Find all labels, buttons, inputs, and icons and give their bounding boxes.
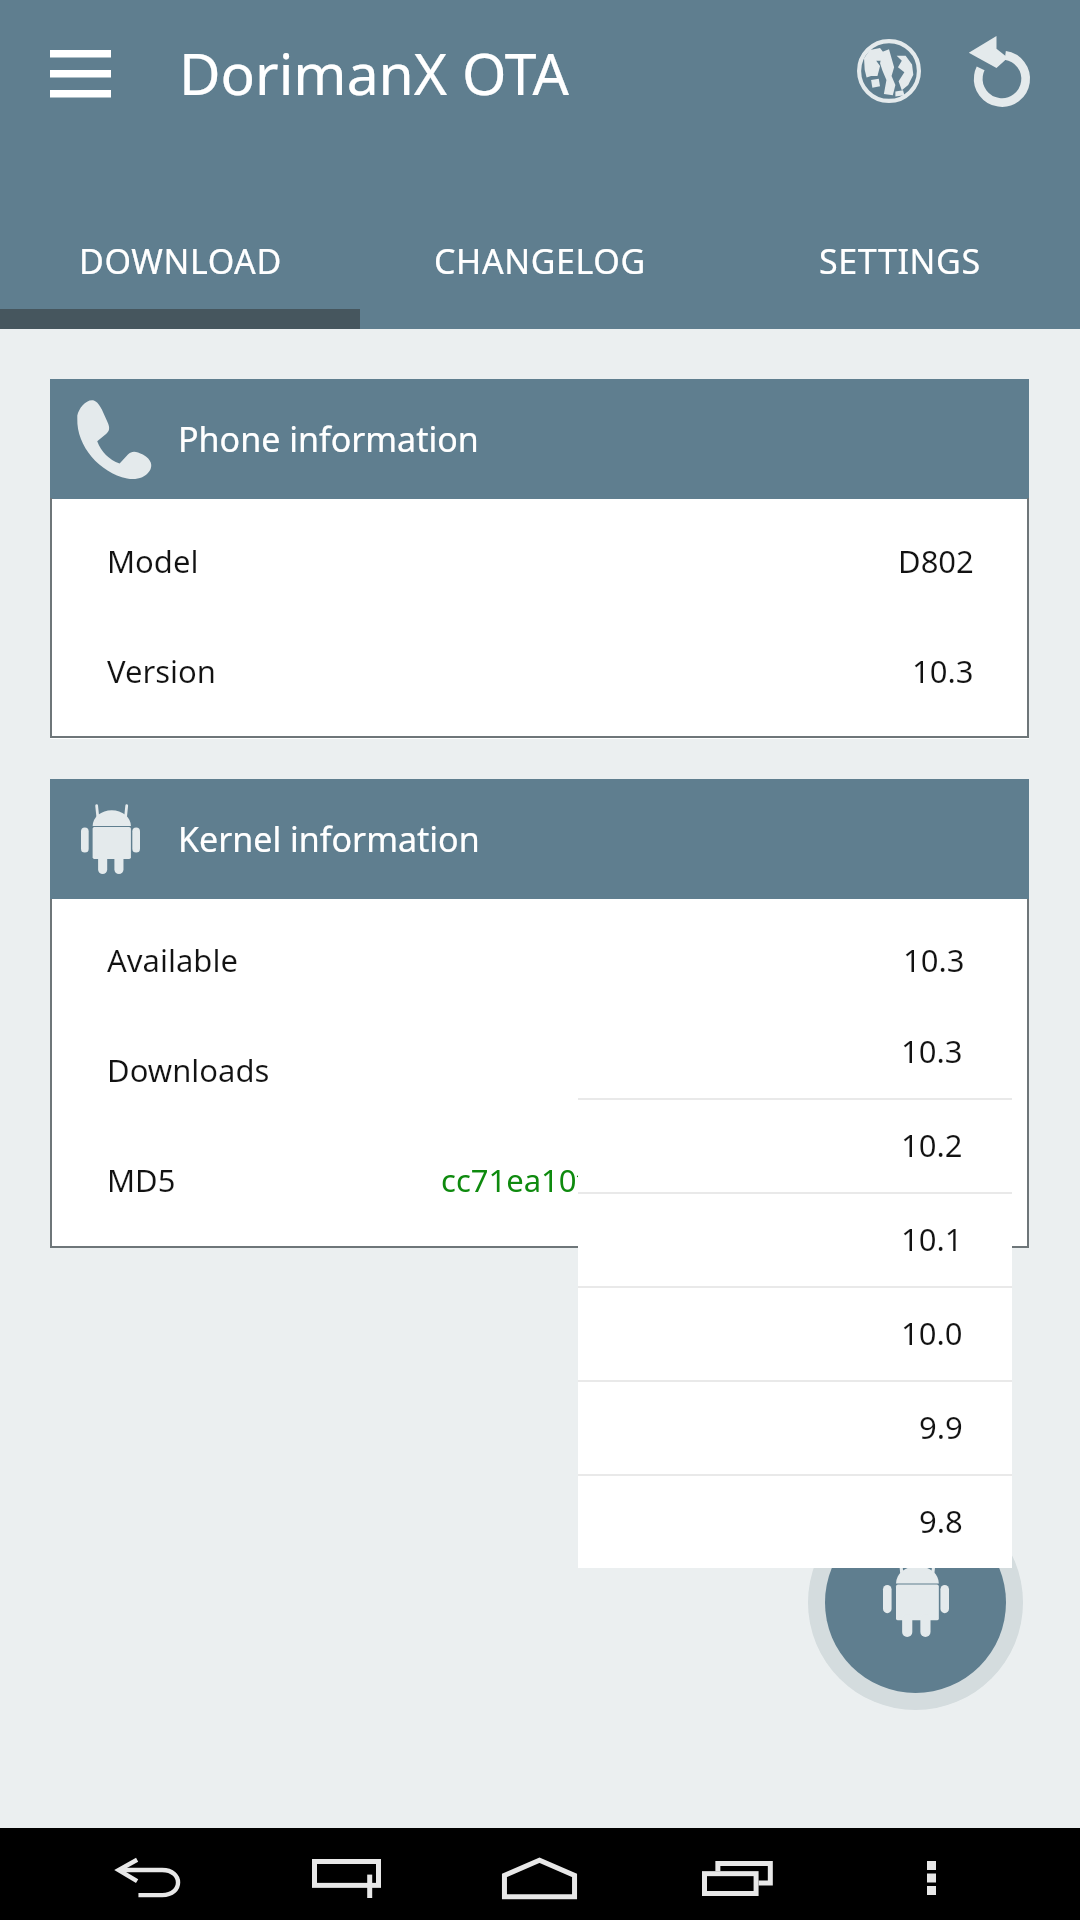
staticText: DorimanX OTA	[179, 34, 569, 112]
staticText: Phone information	[178, 416, 479, 462]
button[interactable]: Kernel information	[50, 779, 1029, 899]
button[interactable]: CHANGELOG	[360, 206, 720, 316]
staticText: Version	[107, 650, 217, 692]
button[interactable]: Hide keyboard	[293, 1828, 399, 1920]
staticText: Model	[107, 540, 199, 582]
button[interactable]: 10.0	[578, 1286, 1012, 1380]
button[interactable]: Version	[50, 616, 1029, 726]
staticText: 10.2	[901, 1124, 963, 1166]
staticText: D802	[898, 540, 974, 582]
staticText: SETTINGS	[819, 238, 981, 284]
staticText: 9.8	[919, 1500, 963, 1542]
button[interactable]: Downloads	[50, 1015, 1029, 1125]
button[interactable]: 9.9	[578, 1380, 1012, 1474]
button[interactable]: 10.3	[578, 1004, 1012, 1098]
staticText: Available	[107, 939, 238, 981]
button[interactable]: DOWNLOAD	[0, 206, 360, 316]
button[interactable]: 10.2	[578, 1098, 1012, 1192]
button[interactable]: Back	[96, 1828, 202, 1920]
button[interactable]: More options	[878, 1828, 984, 1920]
button[interactable]: Refresh	[944, 8, 1056, 133]
button[interactable]: Open navigation drawer	[22, 8, 138, 140]
button[interactable]: MD5	[50, 1125, 1029, 1235]
button[interactable]: Home	[486, 1828, 592, 1920]
button[interactable]: Available	[50, 905, 1029, 1015]
staticText: 10.1	[901, 1218, 963, 1260]
staticText: 10.3	[903, 939, 965, 981]
staticText: DOWNLOAD	[79, 238, 282, 284]
staticText: cc71ea10f6b3de4ba	[441, 1159, 733, 1201]
staticText: CHANGELOG	[434, 238, 646, 284]
button[interactable]: Select server	[834, 8, 944, 133]
staticText: Kernel information	[178, 816, 480, 862]
staticText: 10.3	[901, 1030, 963, 1072]
button[interactable]: Phone information	[50, 379, 1029, 499]
button[interactable]: SETTINGS	[720, 206, 1080, 316]
button[interactable]: Recent apps	[683, 1828, 789, 1920]
staticText: 10.3	[912, 650, 974, 692]
button[interactable]: Model	[50, 506, 1029, 616]
button[interactable]: 10.1	[578, 1192, 1012, 1286]
staticText: MD5	[107, 1159, 176, 1201]
staticText: Downloads	[107, 1049, 270, 1091]
staticText: 9.9	[919, 1406, 963, 1448]
button[interactable]: Download kernel	[808, 1495, 1023, 1710]
button[interactable]: 9.8	[578, 1474, 1012, 1568]
staticText: 10.0	[901, 1312, 963, 1354]
